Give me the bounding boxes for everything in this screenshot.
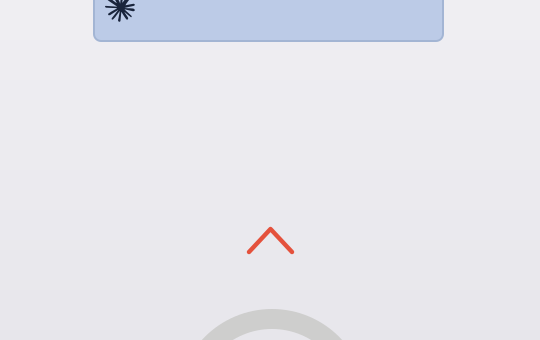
button[interactable]: Collapse bbox=[0, 0, 540, 340]
button[interactable] bbox=[94, 0, 443, 41]
